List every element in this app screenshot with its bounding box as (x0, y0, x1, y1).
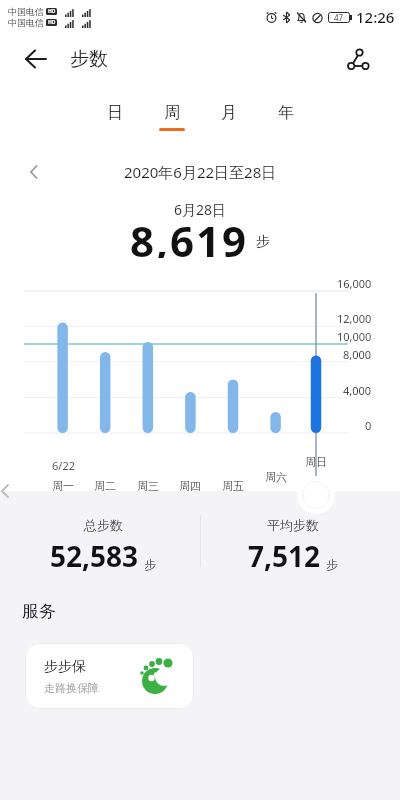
staticText: 年 (278, 103, 294, 123)
button[interactable]: 周 (143, 103, 200, 131)
staticText: 步 (256, 233, 270, 251)
staticText: 10,000 (337, 329, 372, 344)
staticText: 12,000 (337, 311, 372, 326)
staticText: 平均步数 (267, 517, 319, 533)
staticText: 走路换保障 (44, 681, 99, 695)
button[interactable]: 年 (257, 103, 314, 131)
staticText: 周六 (265, 470, 287, 484)
staticText: 周 (164, 103, 180, 123)
staticText: HD (48, 19, 56, 26)
staticText: 步数 (70, 47, 108, 71)
staticText: 6月28日 (174, 200, 227, 219)
button[interactable] (342, 43, 374, 75)
staticText: 步 (326, 557, 338, 572)
staticText: 周四 (179, 479, 201, 493)
staticText: 服务 (22, 601, 56, 622)
staticText: 周一 (52, 479, 74, 493)
button[interactable]: 月 (200, 103, 257, 131)
staticText: 中国电信 (8, 6, 44, 17)
staticText: 12:26 (356, 7, 395, 27)
staticText: 52,583 (50, 537, 139, 575)
button[interactable]: 步步保 (25, 643, 194, 709)
button[interactable]: 平均步数 (193, 517, 393, 587)
staticText: 日 (107, 103, 123, 123)
staticText: 6/22 (52, 458, 75, 473)
staticText: HD (48, 8, 56, 15)
staticText: 总步数 (84, 517, 123, 533)
staticText: 周日 (305, 455, 327, 469)
staticText: 7,512 (248, 537, 321, 575)
staticText: 周三 (137, 479, 159, 493)
staticText: 周二 (94, 479, 116, 493)
staticText: 中国电信 (8, 17, 44, 28)
staticText: 0 (365, 418, 372, 433)
staticText: 8,000 (343, 347, 372, 362)
button[interactable]: 日 (86, 103, 143, 131)
staticText: 47 (334, 12, 344, 23)
staticText: 8,619 (130, 212, 249, 258)
staticText: 4,000 (343, 383, 372, 398)
staticText: 16,000 (337, 276, 372, 291)
button[interactable] (18, 41, 54, 77)
staticText: 2020年6月22日至28日 (124, 162, 277, 182)
button[interactable]: 总步数 (3, 517, 203, 587)
staticText: 月 (221, 103, 237, 123)
staticText: 周五 (222, 479, 244, 493)
staticText: 步步保 (44, 658, 86, 676)
staticText: 步 (144, 557, 156, 572)
